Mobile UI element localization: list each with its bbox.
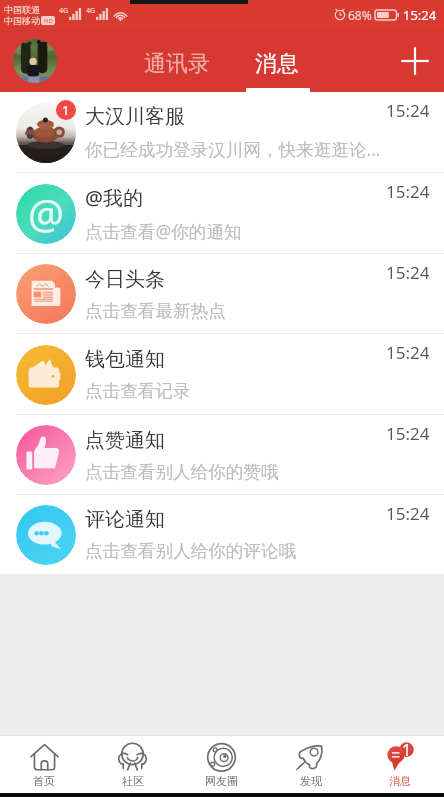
button[interactable]: 发现 [266, 736, 355, 793]
staticText: 发现 [300, 774, 322, 788]
button[interactable]: 1 [355, 736, 444, 793]
staticText: @我的 [85, 184, 143, 211]
staticText: 点击查看别人给你的评论哦 [85, 540, 297, 562]
staticText: 通讯录 [144, 50, 210, 78]
staticText: 15:24 [403, 6, 437, 24]
staticText: 你已经成功登录汉川网，快来逛逛论… [85, 137, 381, 161]
staticText: 点击查看@你的通知 [85, 219, 242, 243]
staticText: 点赞通知 [85, 428, 165, 453]
staticText: 1 [402, 739, 412, 761]
staticText: 评论通知 [85, 507, 165, 532]
staticText: 大汉川客服 [85, 104, 185, 129]
staticText: 今日头条 [85, 267, 165, 292]
button[interactable]: 点赞通知 [0, 415, 444, 495]
staticText: 4G [59, 6, 69, 16]
button[interactable]: 今日头条 [0, 254, 444, 334]
staticText: 钱包通知 [85, 347, 165, 372]
staticText: 消息 [255, 50, 299, 78]
staticText: 1 [62, 101, 70, 119]
button[interactable]: 社区 [88, 736, 177, 793]
staticText: 68% [348, 7, 372, 23]
button[interactable]: 首页 [0, 736, 88, 793]
staticText: 首页 [33, 774, 55, 788]
staticText: 15:24 [386, 341, 430, 364]
button[interactable]: 1 [0, 92, 444, 173]
staticText: 15:24 [386, 502, 430, 525]
staticText: 15:24 [386, 422, 430, 445]
button[interactable]: 钱包通知 [0, 334, 444, 415]
staticText: 网友圈 [205, 774, 238, 788]
button[interactable]: Profile [13, 39, 57, 83]
staticText: 15:24 [386, 261, 430, 284]
button[interactable]: Add [393, 39, 437, 83]
staticText: 中国联通 [4, 4, 40, 15]
button[interactable]: @ [0, 173, 444, 254]
button[interactable]: 通讯录 [144, 30, 210, 92]
staticText: HD [44, 17, 53, 25]
staticText: 15:24 [386, 99, 430, 122]
button[interactable]: 评论通知 [0, 495, 444, 574]
staticText: 4G [86, 6, 96, 16]
button[interactable]: 网友圈 [177, 736, 266, 793]
staticText: @ [28, 186, 64, 240]
staticText: 15:24 [386, 180, 430, 203]
staticText: 点击查看记录 [85, 380, 191, 402]
staticText: 点击查看最新热点 [85, 300, 226, 322]
staticText: 消息 [389, 774, 411, 788]
button[interactable]: 消息 [255, 30, 299, 92]
staticText: 点击查看别人给你的赞哦 [85, 461, 279, 483]
staticText: 中国移动 [4, 15, 40, 26]
staticText: 社区 [122, 774, 144, 788]
